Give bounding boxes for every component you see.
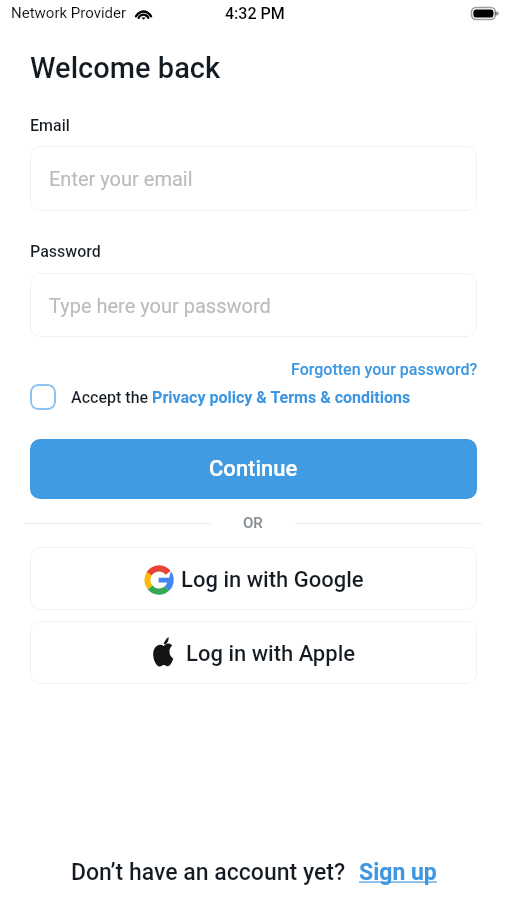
staticText: Continue <box>209 456 298 482</box>
staticText: Log in with Apple <box>186 641 356 667</box>
staticText: Don’t have an account yet? <box>71 859 346 886</box>
staticText: Enter your email <box>49 167 193 190</box>
button[interactable]: Enter your email <box>30 146 477 211</box>
staticText: Welcome back <box>30 51 221 85</box>
button[interactable]: Log in with Google <box>30 547 477 610</box>
staticText: Password <box>30 242 101 261</box>
button[interactable]: Accept the Privacy policy & Terms & cond… <box>71 388 411 407</box>
staticText: OR <box>243 514 263 532</box>
button[interactable]: Log in with Apple <box>30 621 477 684</box>
staticText: 4:32 PM <box>225 4 285 23</box>
button[interactable]: Type here your password <box>30 273 477 337</box>
button[interactable]: Forgotten your password? <box>291 360 478 379</box>
staticText: Log in with Google <box>181 567 364 593</box>
staticText: Type here your password <box>49 294 271 317</box>
button[interactable]: Accept terms checkbox <box>30 384 56 410</box>
button[interactable]: Continue <box>30 439 477 499</box>
staticText: Network Provider <box>11 4 127 22</box>
button[interactable]: Sign up <box>359 859 437 886</box>
staticText: Email <box>30 116 70 135</box>
